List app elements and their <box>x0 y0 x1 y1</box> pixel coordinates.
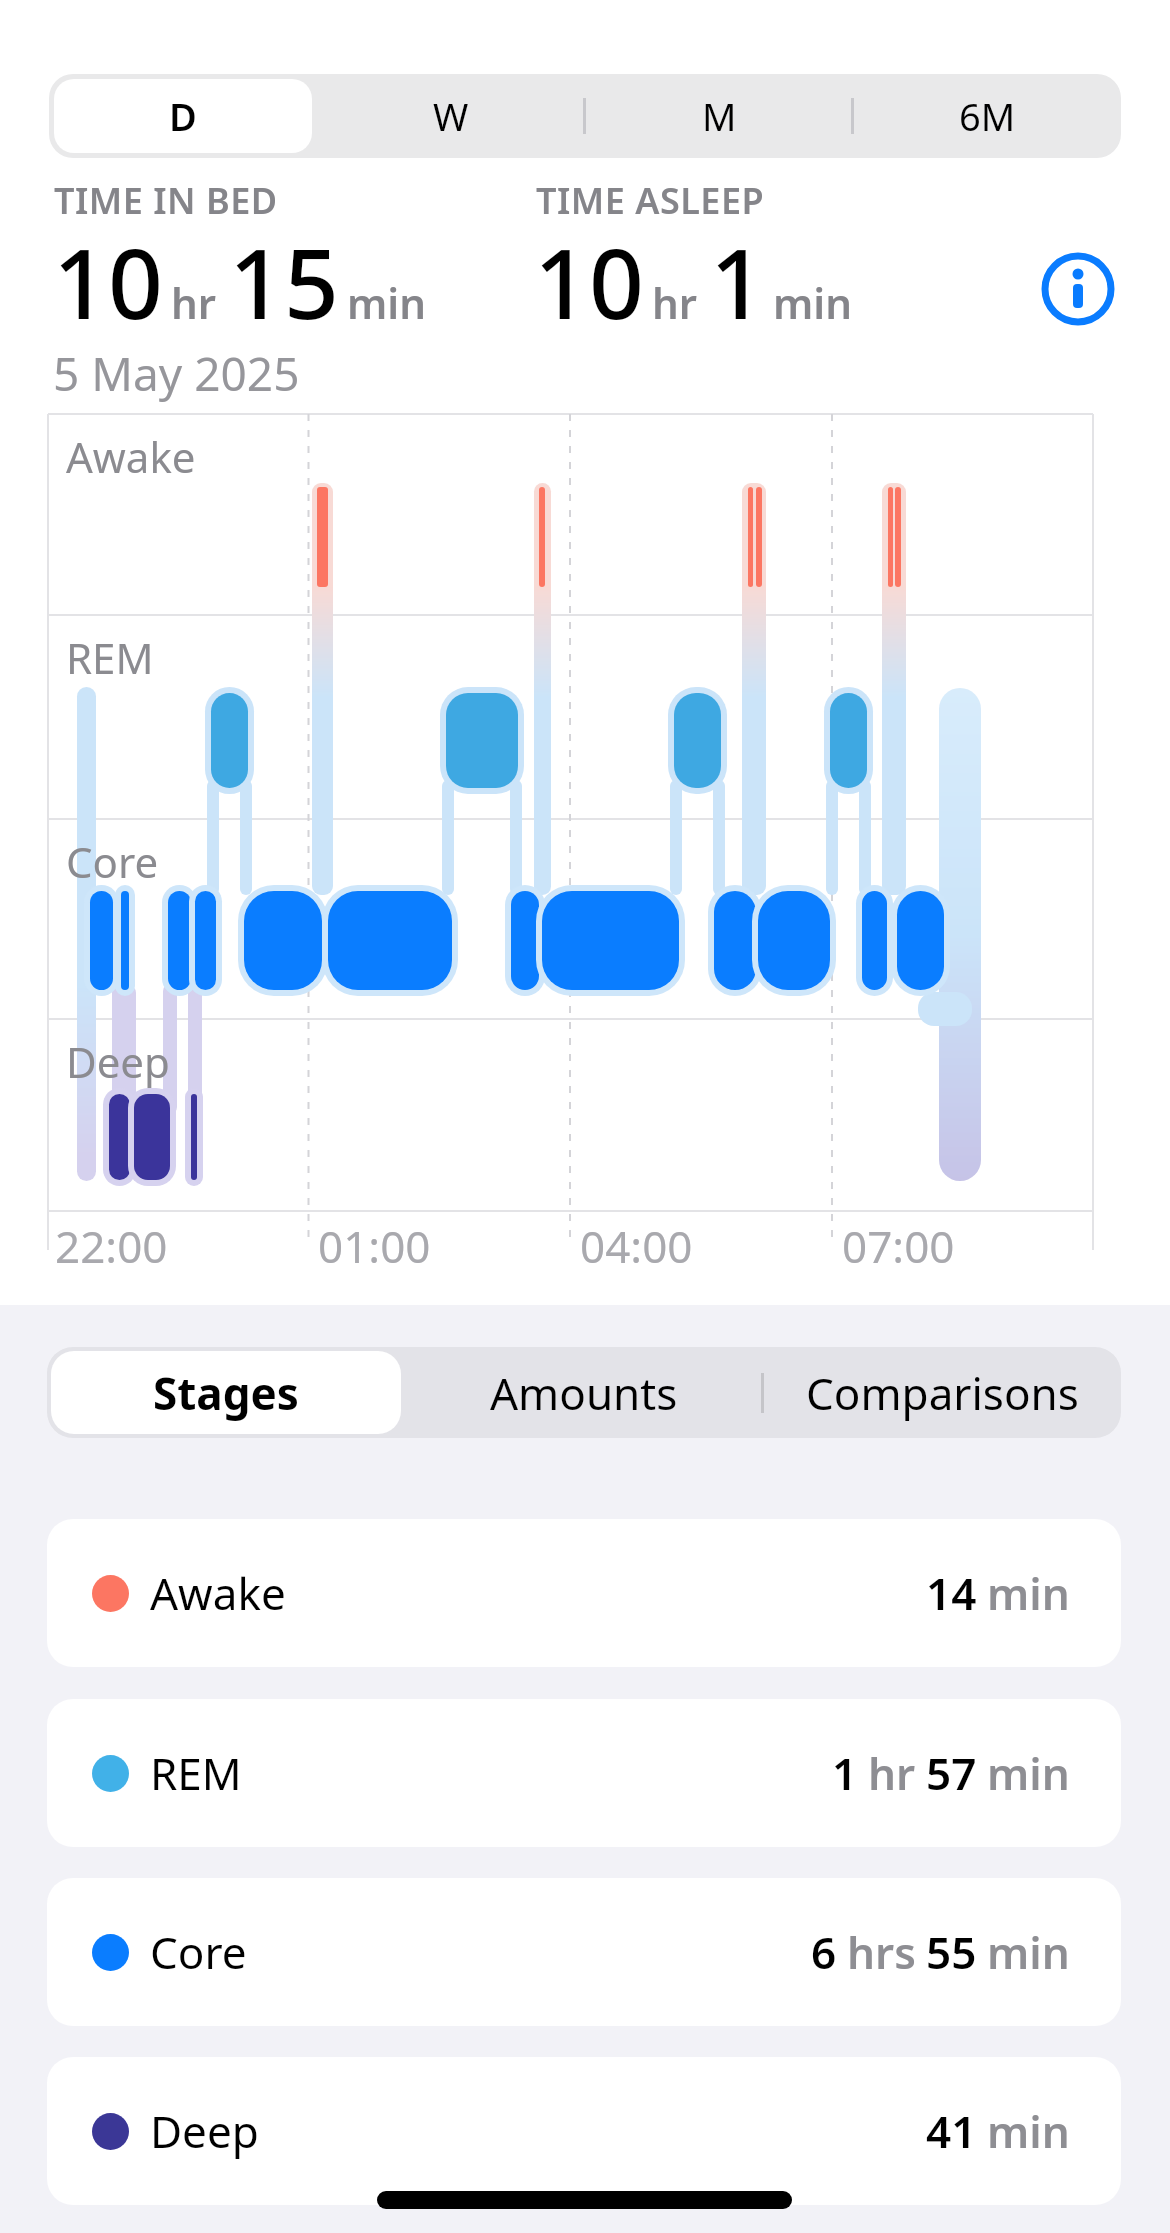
staticText: 14 <box>926 1563 977 1623</box>
button[interactable]: Amounts <box>405 1347 763 1438</box>
button[interactable] <box>1039 250 1117 328</box>
staticText: 04:00 <box>580 1216 693 1276</box>
staticText: hrs <box>847 1922 916 1982</box>
button[interactable]: Comparisons <box>763 1347 1121 1438</box>
staticText: Awake <box>66 428 196 485</box>
staticText: W <box>433 90 469 142</box>
staticText: min <box>347 274 427 331</box>
staticText: M <box>702 90 737 142</box>
staticText: Amounts <box>490 1363 678 1423</box>
staticText: 07:00 <box>842 1216 955 1276</box>
staticText: Comparisons <box>806 1363 1079 1423</box>
staticText: min <box>987 1563 1070 1623</box>
staticText: D <box>169 90 197 142</box>
staticText: min <box>987 1743 1070 1803</box>
button[interactable]: 6M <box>853 74 1121 158</box>
staticText: 1 <box>710 216 765 347</box>
staticText: hr <box>868 1743 916 1803</box>
staticText: 6 <box>811 1922 837 1982</box>
staticText: 01:00 <box>318 1216 431 1276</box>
staticText: REM <box>66 629 154 686</box>
staticText: min <box>987 2101 1070 2161</box>
staticText: 5 May 2025 <box>53 342 300 405</box>
button[interactable]: Stages <box>47 1347 405 1438</box>
staticText: 10 <box>53 216 163 347</box>
staticText: TIME ASLEEP <box>536 176 765 225</box>
staticText: hr <box>652 274 698 331</box>
button[interactable]: M <box>585 74 853 158</box>
button[interactable]: Core <box>47 1878 1121 2026</box>
staticText: 41 <box>926 2101 977 2161</box>
staticText: Stages <box>153 1363 299 1423</box>
staticText: 10 <box>534 216 644 347</box>
staticText: min <box>773 274 853 331</box>
staticText: 6M <box>959 90 1016 142</box>
staticText: Deep <box>150 2101 259 2161</box>
staticText: Deep <box>66 1033 170 1090</box>
staticText: hr <box>171 274 217 331</box>
staticText: 1 <box>832 1743 858 1803</box>
staticText: Core <box>66 833 159 890</box>
staticText: Awake <box>150 1563 286 1623</box>
staticText: 57 <box>926 1743 977 1803</box>
staticText: Core <box>150 1922 247 1982</box>
staticText: 55 <box>926 1922 977 1982</box>
button[interactable]: Deep <box>47 2057 1121 2205</box>
button[interactable]: REM <box>47 1699 1121 1847</box>
staticText: 22:00 <box>55 1216 168 1276</box>
button[interactable]: D <box>49 74 317 158</box>
button[interactable]: W <box>317 74 585 158</box>
staticText: min <box>987 1922 1070 1982</box>
staticText: 15 <box>229 216 339 347</box>
button[interactable]: Awake <box>47 1519 1121 1667</box>
staticText: TIME IN BED <box>54 176 278 225</box>
staticText: REM <box>150 1743 242 1803</box>
